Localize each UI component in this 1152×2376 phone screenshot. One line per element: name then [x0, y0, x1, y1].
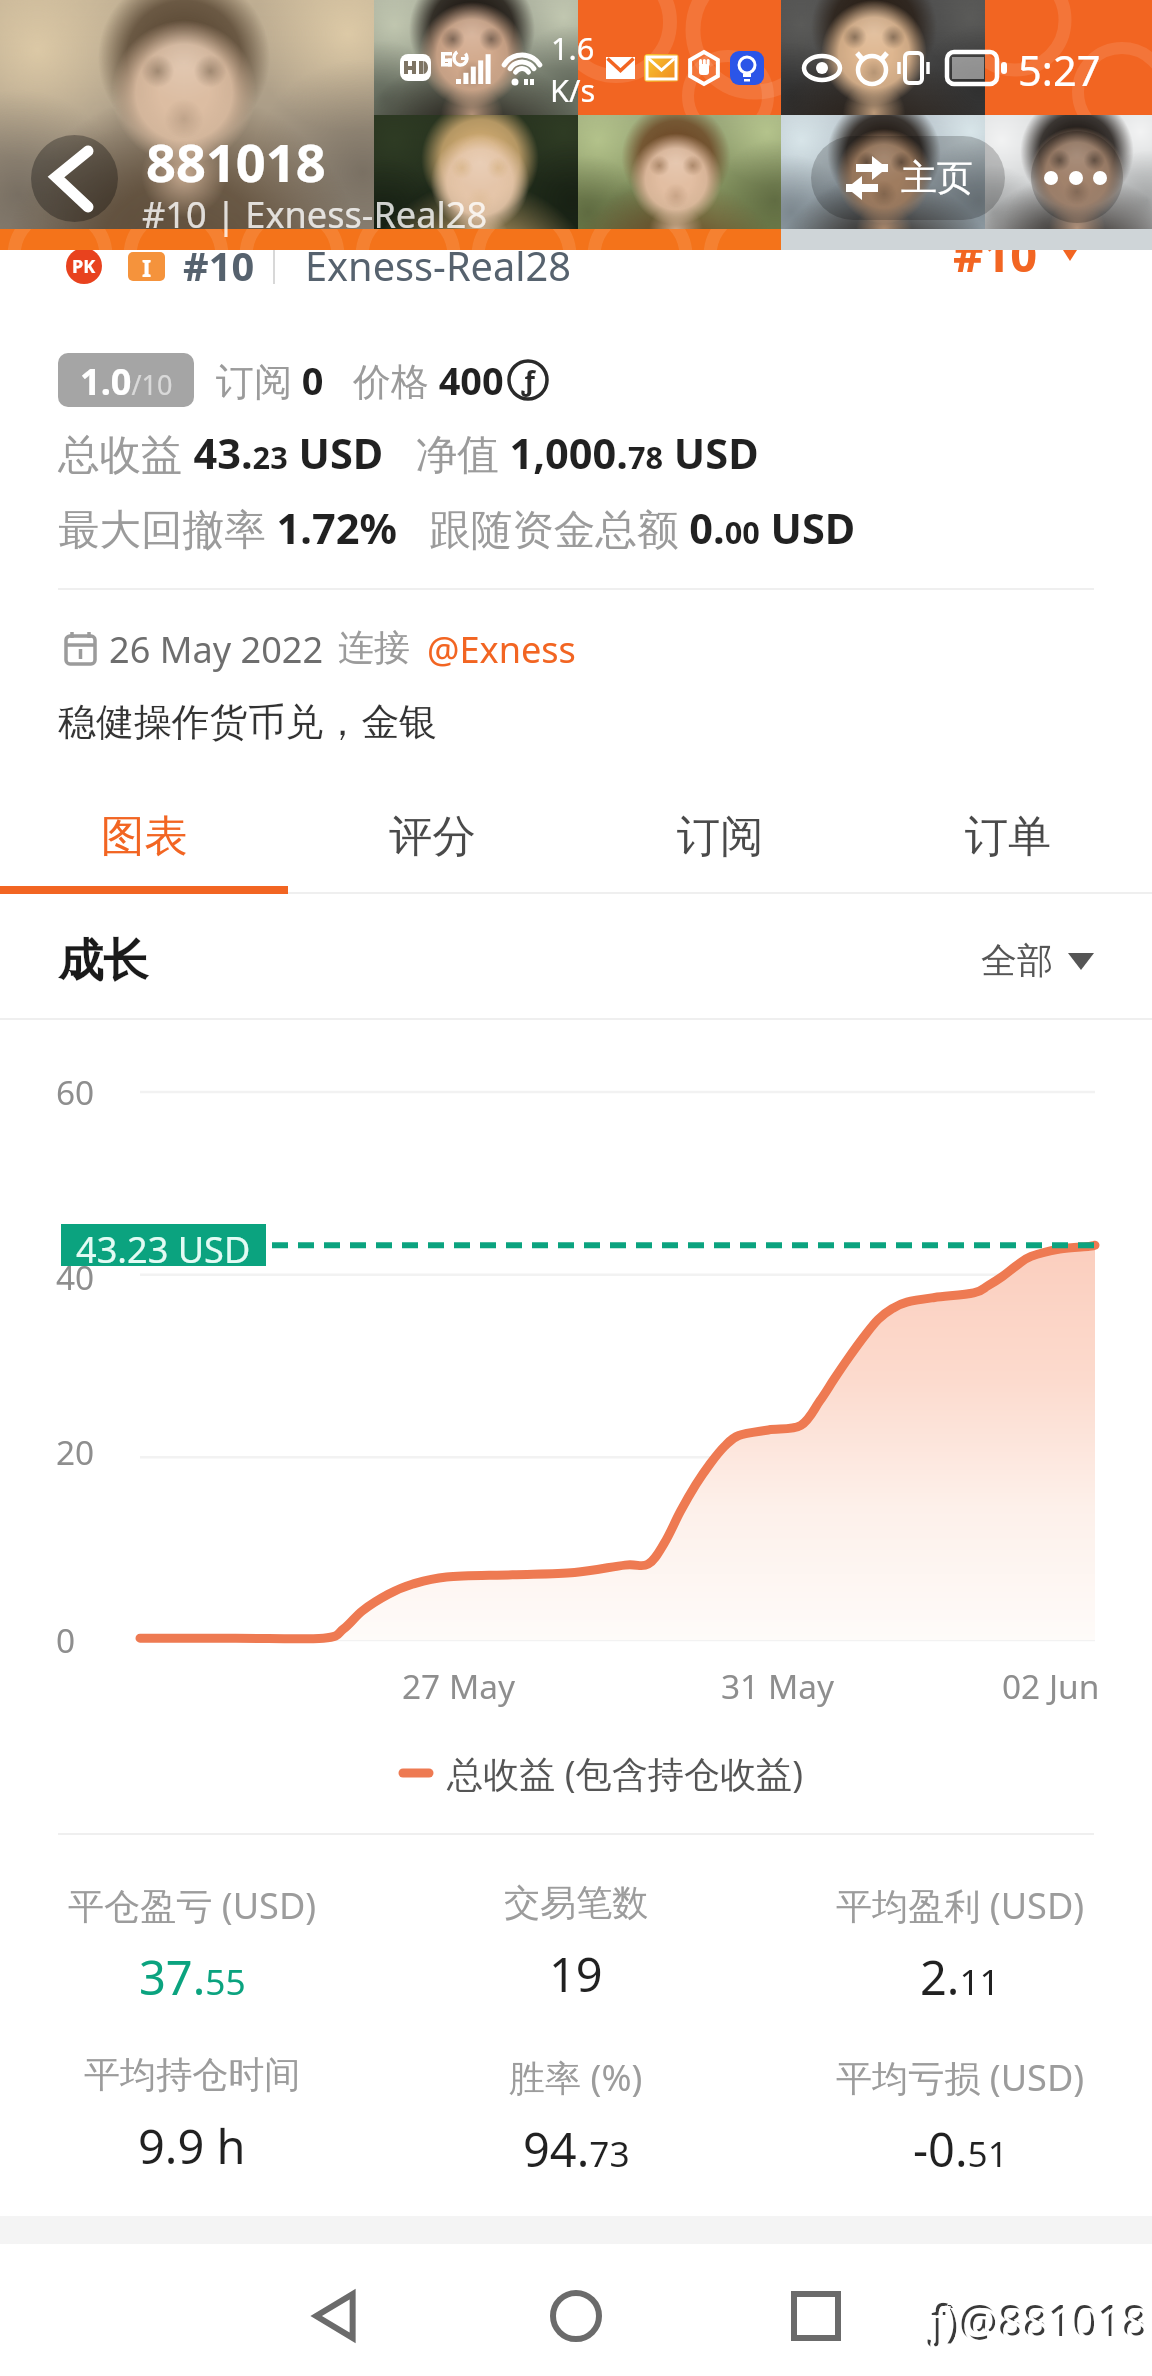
staticText: -0.51 — [913, 2117, 1008, 2181]
staticText: I — [142, 252, 152, 281]
staticText: 26 May 2022 — [109, 624, 324, 673]
staticText: 订单 — [965, 809, 1052, 864]
staticText: #10 — [953, 222, 1038, 278]
staticText: 平均亏损 (USD) — [836, 2052, 1085, 2101]
button[interactable]: Back — [31, 135, 118, 222]
staticText: Exness-Real28 — [305, 239, 571, 293]
staticText: #10 — [183, 239, 255, 293]
staticText: 1.0/10 — [80, 356, 173, 405]
staticText: K/s — [550, 69, 596, 111]
staticText: 19 — [549, 1942, 603, 2006]
staticText: 2.11 — [920, 1945, 1000, 2009]
staticText: 9.9 h — [138, 2114, 246, 2178]
button[interactable]: 订阅 — [576, 786, 864, 886]
staticText: 最大回撤率 1.72% 跟随资金总额 0.00 USD — [58, 500, 856, 557]
staticText: 5:27 — [1018, 42, 1101, 99]
staticText: ƒ)@881018 — [931, 2293, 1150, 2352]
staticText: 订阅 0 价格 400 — [216, 354, 504, 406]
button[interactable]: More options — [1031, 131, 1123, 223]
staticText: 31 May — [721, 1663, 834, 1709]
button[interactable]: Recent apps — [780, 2280, 852, 2352]
staticText: 平均持仓时间 — [84, 2052, 301, 2098]
button[interactable]: Home — [540, 2280, 612, 2352]
button[interactable]: 主页 — [846, 136, 974, 220]
staticText: 43.23 USD — [76, 1224, 251, 1266]
button[interactable]: 全部 — [981, 938, 1094, 984]
staticText: 27 May — [402, 1663, 515, 1709]
staticText: 881018 — [146, 126, 326, 197]
staticText: 连接 — [338, 625, 411, 671]
staticText: @Exness — [427, 624, 576, 673]
staticText: PK — [72, 254, 96, 279]
staticText: 02 Jun — [1002, 1663, 1100, 1709]
staticText: 总收益 (包含持仓收益) — [447, 1748, 804, 1797]
staticText: 交易笔数 — [504, 1880, 649, 1926]
staticText: 1.6 — [551, 27, 595, 69]
staticText: 平均盈利 (USD) — [836, 1880, 1085, 1929]
staticText: 图表 — [101, 809, 188, 864]
staticText: 全部 — [981, 938, 1054, 984]
staticText: 60 — [56, 1069, 95, 1115]
button[interactable]: 图表 — [0, 786, 288, 886]
staticText: 平仓盈亏 (USD) — [68, 1880, 317, 1929]
staticText: 94.73 — [523, 2117, 630, 2181]
staticText: 订阅 — [677, 809, 764, 864]
staticText: ƒ — [521, 362, 535, 399]
staticText: 40 — [56, 1254, 95, 1300]
staticText: 0 — [56, 1617, 76, 1663]
staticText: 胜率 (%) — [509, 2052, 643, 2101]
staticText: 成长 — [58, 933, 149, 990]
staticText: 37.55 — [139, 1945, 246, 2009]
staticText: 总收益 43.23 USD 净值 1,000.78 USD — [58, 425, 759, 482]
staticText: 20 — [56, 1429, 95, 1475]
button[interactable]: Back — [300, 2280, 372, 2352]
button[interactable]: 评分 — [288, 786, 576, 886]
staticText: 主页 — [901, 155, 974, 201]
staticText: #10 | Exness-Real28 — [142, 189, 488, 238]
staticText: 评分 — [389, 809, 476, 864]
staticText: ƒ)@881018 — [928, 2290, 1147, 2349]
button[interactable]: 订单 — [864, 786, 1152, 886]
staticText: 稳健操作货币兑，金银 — [58, 698, 438, 746]
